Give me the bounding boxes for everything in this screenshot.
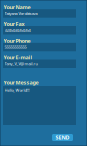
staticText: Your E-mail: [3, 54, 32, 61]
staticText: SEND: [55, 134, 69, 141]
staticText: 55555555555: [4, 44, 26, 50]
staticText: Your Fax: [3, 20, 24, 28]
button[interactable]: SEND: [52, 134, 73, 141]
staticText: Hello, World!!!: [4, 87, 29, 93]
staticText: Your Name: [3, 4, 30, 11]
staticText: Tany_V_V@mail.ru: [4, 61, 37, 66]
staticText: 3245434354354: [4, 28, 30, 33]
staticText: Tatyana Vorobtsova: [4, 11, 37, 16]
staticText: Your Phone: [3, 37, 30, 44]
staticText: Your Message: [3, 79, 38, 86]
